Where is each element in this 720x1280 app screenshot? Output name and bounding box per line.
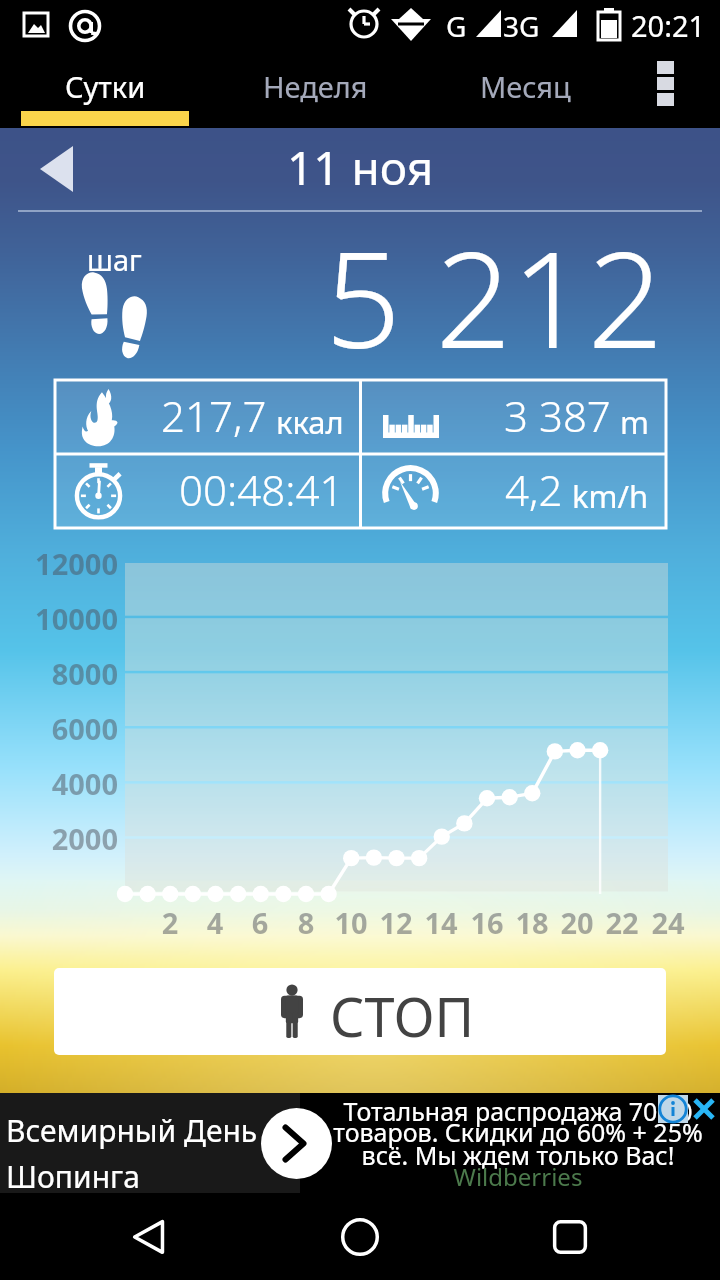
staticText: 10000 [10,599,118,638]
staticText: 14 [411,903,471,942]
staticText: 10 [321,903,381,942]
button[interactable]: Месяц [420,48,630,128]
staticText: 18 [502,903,562,942]
staticText: 4 [185,903,245,942]
button[interactable]: Всемирный День [0,1093,300,1193]
staticText: 6 [230,903,290,942]
staticText: 00:48:41 [179,461,344,518]
staticText: ккал [276,401,344,443]
staticText: 8000 [10,654,118,693]
button[interactable]: СТОП [54,968,666,1055]
button[interactable]: More options [630,48,720,128]
button[interactable]: Open advertisement [261,1108,332,1179]
staticText: Неделя [263,67,368,106]
staticText: 4,2 [505,461,563,518]
staticText: 3 387 [504,387,611,444]
staticText: всё. Мы ждем только Вас! [317,1138,719,1172]
staticText: 6000 [10,709,118,748]
staticText: 20 [547,903,607,942]
staticText: 8 [276,903,336,942]
staticText: товаров. Скидки до 60% + 25% на [317,1115,719,1149]
staticText: 2000 [10,819,118,858]
staticText: 20:21 [631,6,706,45]
button[interactable]: Неделя [210,48,420,128]
button[interactable]: Close advertisement [688,1095,720,1123]
staticText: 24 [638,903,698,942]
staticText: 16 [457,903,517,942]
button[interactable]: Home [300,1194,420,1280]
staticText: Месяц [480,67,571,106]
button[interactable]: Сутки [0,48,210,128]
staticText: Шопинга [6,1156,140,1197]
staticText: m [620,401,649,443]
staticText: Сутки [65,67,146,106]
staticText: Wildberries [317,1160,719,1193]
staticText: 11 ноя [287,136,434,199]
staticText: шаг [87,240,142,279]
staticText: G [446,7,467,45]
staticText: Тотальная распродажа 700 0 [317,1094,719,1128]
button[interactable]: Ad information [658,1095,688,1123]
staticText: 22 [592,903,652,942]
staticText: 217,7 [161,387,267,444]
staticText: СТОП [330,979,475,1053]
staticText: 3G [503,7,540,45]
staticText: 12000 [10,544,118,583]
staticText: Всемирный День [6,1110,258,1151]
staticText: 5 212 [325,206,664,387]
staticText: 4000 [10,764,118,803]
button[interactable]: Previous day [10,133,110,205]
staticText: 2 [140,903,200,942]
button[interactable]: Recent apps [510,1194,630,1280]
button[interactable]: Back [90,1194,210,1280]
staticText: 12 [366,903,426,942]
staticText: km/h [572,475,649,517]
